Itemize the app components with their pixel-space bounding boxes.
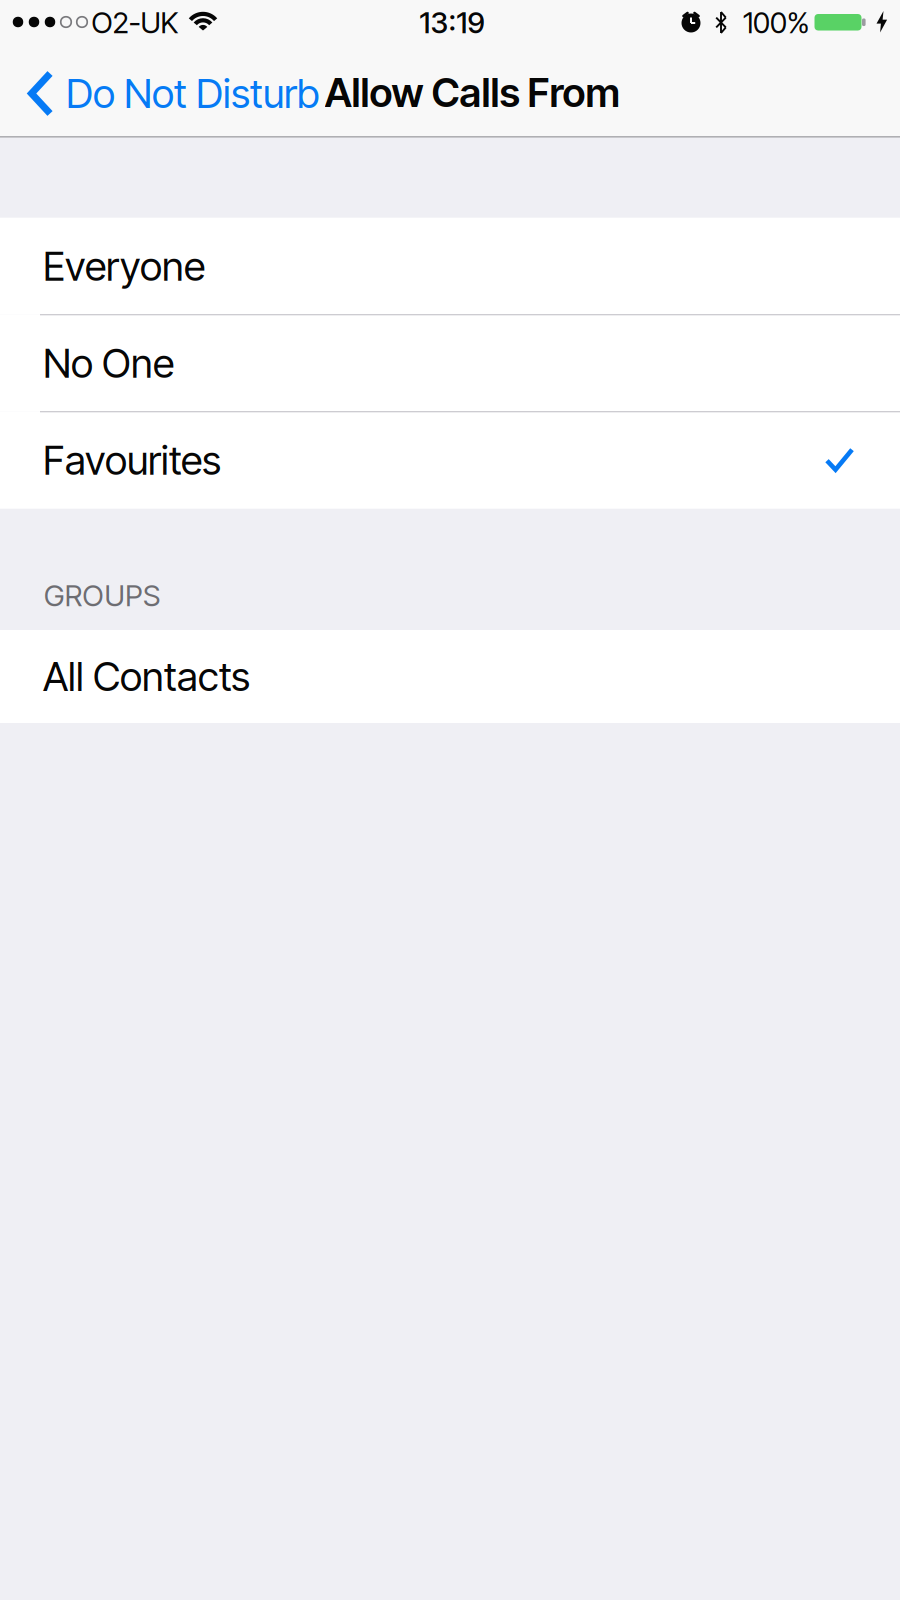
staticText: 13:19 (419, 5, 484, 40)
button[interactable]: Favourites (0, 412, 900, 509)
staticText: 100% (743, 5, 809, 40)
staticText: O2-UK (91, 5, 178, 40)
button[interactable]: No One (0, 315, 900, 412)
staticText: Allow Calls From (324, 68, 619, 117)
staticText: All Contacts (43, 652, 250, 701)
staticText: Everyone (43, 242, 205, 290)
button[interactable]: All Contacts (0, 630, 900, 723)
staticText: Do Not Disturb (66, 69, 319, 118)
button[interactable]: Back (28, 69, 319, 118)
button[interactable]: Everyone (0, 218, 900, 315)
staticText: No One (43, 339, 174, 387)
staticText: GROUPS (44, 578, 160, 613)
staticText: Favourites (43, 436, 221, 484)
